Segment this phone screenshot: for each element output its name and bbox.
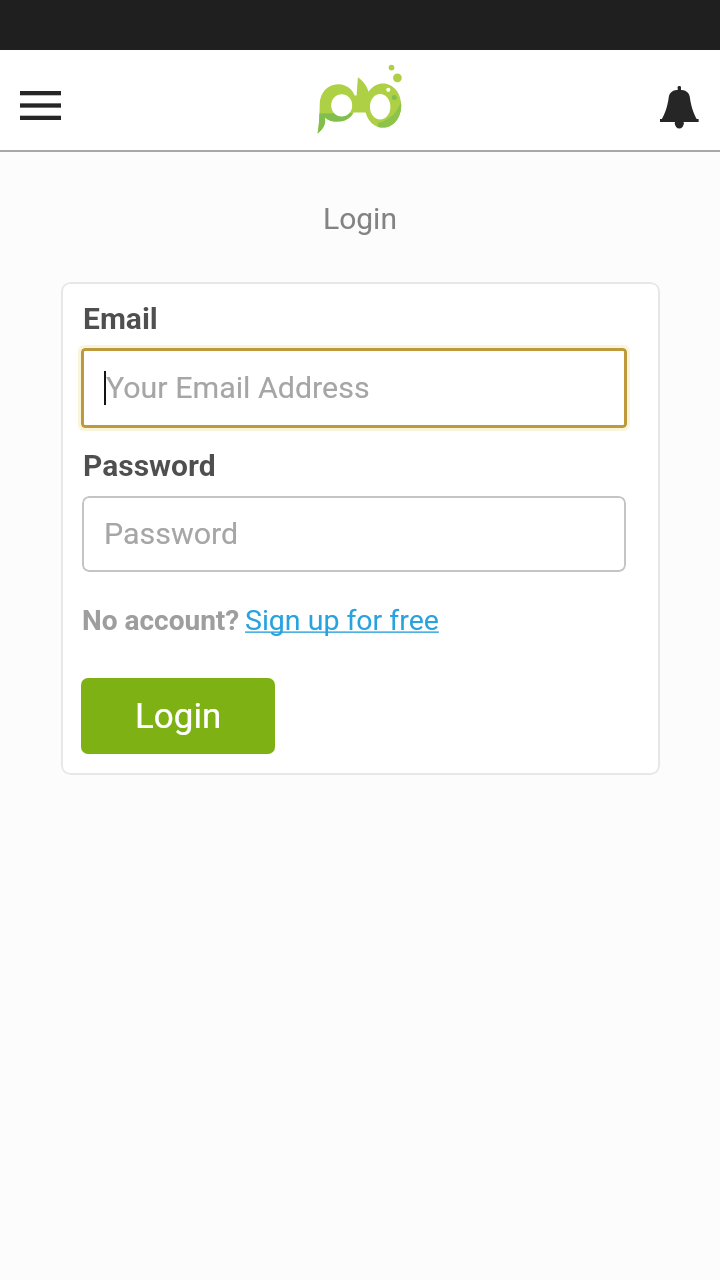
staticText: Your Email Address bbox=[106, 370, 370, 406]
staticText: Password bbox=[104, 516, 239, 552]
button[interactable]: Menu bbox=[4, 74, 76, 134]
staticText: Login bbox=[323, 201, 397, 236]
button[interactable]: Your Email Address bbox=[81, 348, 627, 428]
button[interactable]: Notifications bbox=[647, 74, 711, 142]
button[interactable]: Password bbox=[82, 496, 626, 572]
button[interactable]: Login bbox=[81, 678, 275, 754]
staticText: Sign up for free bbox=[245, 604, 439, 637]
staticText: Login bbox=[135, 696, 222, 737]
staticText: Email bbox=[83, 301, 158, 336]
staticText: Password bbox=[83, 448, 216, 483]
staticText: No account? bbox=[82, 604, 240, 637]
button[interactable]: Sign up for free bbox=[245, 604, 439, 637]
